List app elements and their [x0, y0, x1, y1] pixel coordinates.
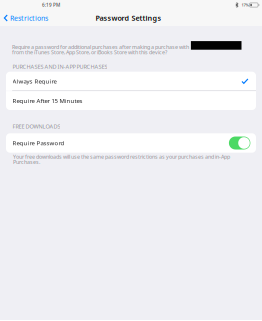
- button[interactable]: Always Require: [6, 72, 256, 91]
- staticText: Always Require: [13, 77, 57, 85]
- staticText: 6:19 PM: [42, 2, 60, 8]
- staticText: Require Password: [13, 139, 65, 147]
- staticText: PURCHASES AND IN-APP PURCHASES: [12, 63, 107, 70]
- button[interactable]: Require Password: [6, 133, 256, 153]
- staticText: Password Settings: [95, 13, 161, 23]
- staticText: Restrictions: [10, 13, 48, 23]
- staticText: Require a password for additional purcha…: [12, 43, 189, 51]
- button[interactable]: Restrictions: [0, 10, 54, 26]
- staticText: FREE DOWNLOADS: [12, 123, 60, 130]
- staticText: Require After 15 Minutes: [13, 96, 83, 105]
- staticText: Your free downloads will use the same pa…: [13, 153, 230, 160]
- staticText: from the iTunes Store, App Store, or iBo…: [12, 48, 167, 56]
- staticText: 17%: [241, 2, 248, 8]
- staticText: Purchases.: [13, 158, 40, 166]
- button[interactable]: Require After 15 Minutes: [6, 91, 256, 110]
